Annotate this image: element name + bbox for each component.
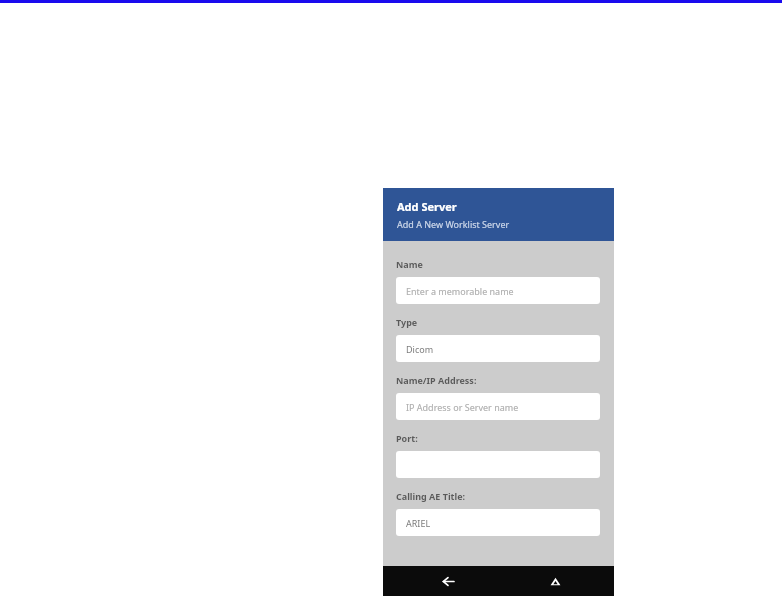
staticText: Name/IP Address:	[396, 374, 477, 386]
button[interactable]: IP Address or Server name	[396, 393, 600, 420]
button[interactable]: Add Server	[383, 188, 614, 241]
staticText: Name	[396, 258, 423, 270]
button[interactable]: Back	[435, 568, 461, 594]
staticText: Calling AE Title:	[396, 490, 466, 502]
button[interactable]: Dicom	[396, 335, 600, 362]
staticText: Dicom	[406, 343, 434, 355]
button[interactable]: Home	[542, 568, 568, 594]
button[interactable]: Enter a memorable name	[396, 277, 600, 304]
staticText: Add A New Worklist Server	[397, 218, 510, 230]
button[interactable]: ARIEL	[396, 509, 600, 536]
staticText: Add Server	[397, 199, 457, 214]
staticText: IP Address or Server name	[406, 401, 519, 413]
staticText: Enter a memorable name	[406, 285, 514, 297]
staticText: Port:	[396, 432, 418, 444]
staticText: Type	[396, 316, 418, 328]
staticText: ARIEL	[406, 517, 431, 529]
